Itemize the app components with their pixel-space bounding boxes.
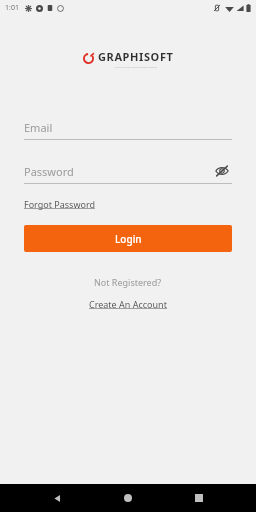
button[interactable]: Create An Account xyxy=(85,296,171,312)
staticText: 1:01 xyxy=(5,3,19,13)
staticText: Email xyxy=(24,120,53,135)
button[interactable]: Forgot Password xyxy=(24,196,96,212)
staticText: PART OF THE NEMETSCHEK GROUP xyxy=(115,65,158,68)
staticText: Password xyxy=(24,164,74,179)
staticText: Create An Account xyxy=(89,298,167,310)
staticText: Forgot Password xyxy=(24,198,96,210)
staticText: Not Registered? xyxy=(94,276,162,288)
staticText: GRAPHISOFT xyxy=(98,49,174,64)
staticText: Login xyxy=(115,232,142,246)
button[interactable]: Login xyxy=(24,225,232,252)
button[interactable]: Back xyxy=(43,484,71,512)
button[interactable]: Recent apps xyxy=(185,484,213,512)
button[interactable]: Home xyxy=(114,484,142,512)
button[interactable]: Show password xyxy=(212,161,232,181)
